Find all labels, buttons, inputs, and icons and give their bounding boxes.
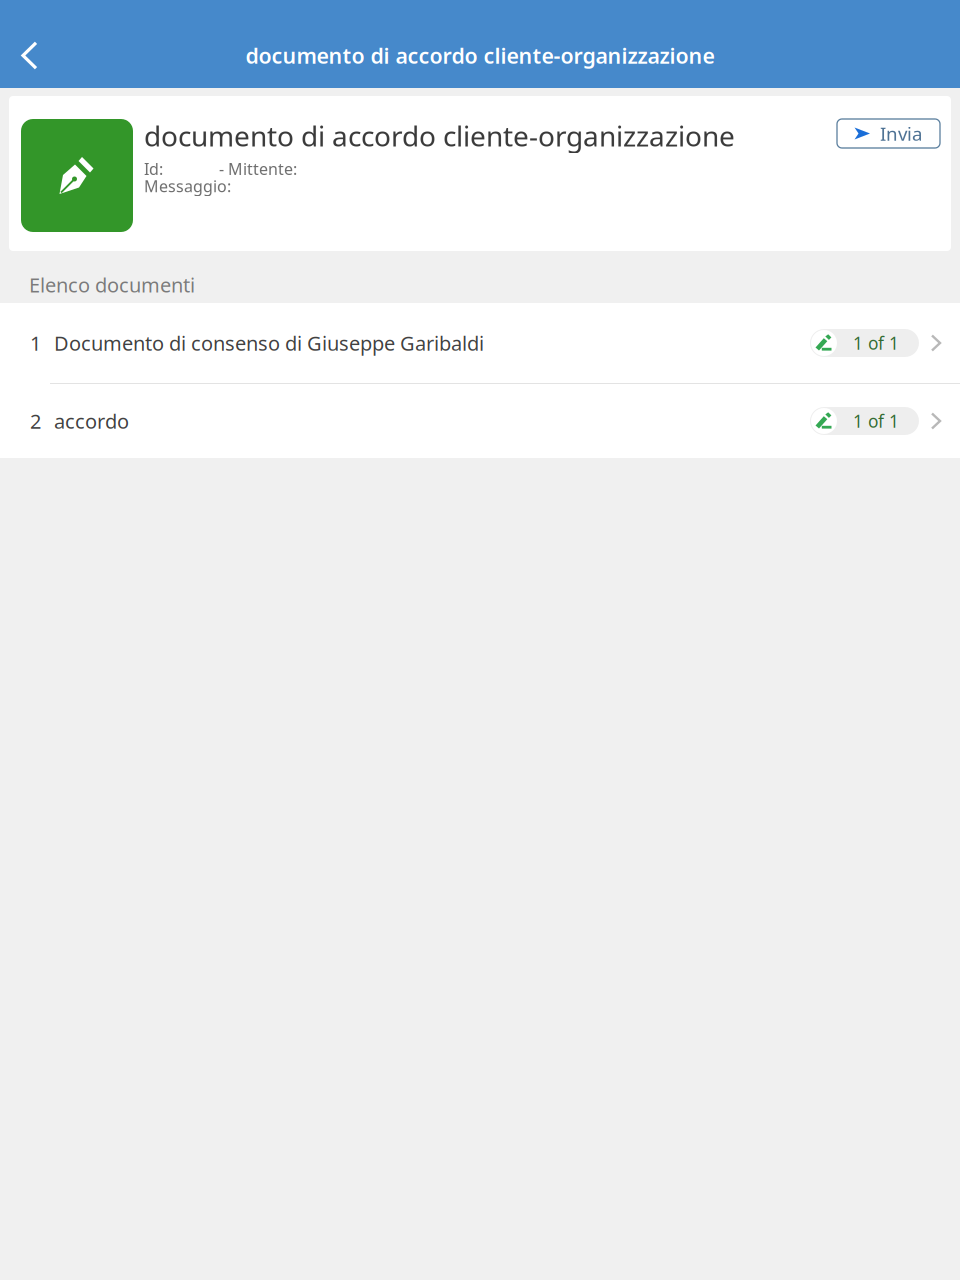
staticText: 1 of 1 [853,331,899,354]
button[interactable]: 1 [0,303,960,383]
staticText: accordo [54,408,129,434]
staticText: Documento di consenso di Giuseppe Gariba… [54,330,484,356]
staticText: 2 [30,408,41,434]
button[interactable]: Back [0,23,54,88]
staticText: documento di accordo cliente-organizzazi… [144,117,735,154]
button[interactable]: Invia [837,119,940,148]
staticText: Invia [880,121,922,146]
staticText: documento di accordo cliente-organizzazi… [245,41,714,70]
staticText: 1 of 1 [853,409,899,432]
staticText: Elenco documenti [29,271,195,298]
staticText: Messaggio: [144,175,231,197]
staticText: Id: - Mittente: [144,158,297,179]
button[interactable]: 2 [0,384,960,458]
staticText: 1 [30,330,41,356]
